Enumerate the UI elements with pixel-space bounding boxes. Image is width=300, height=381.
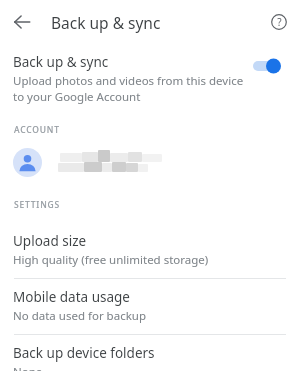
staticText: SETTINGS: [14, 199, 60, 211]
staticText: Upload photos and videos from this devic…: [13, 73, 245, 104]
button[interactable]: Upload size: [0, 223, 300, 278]
button[interactable]: [0, 136, 300, 189]
button[interactable]: Back up device folders: [0, 335, 300, 381]
staticText: Mobile data usage: [13, 288, 130, 306]
staticText: Back up & sync: [51, 12, 161, 33]
staticText: High quality (free unlimited storage): [13, 252, 209, 268]
staticText: Upload size: [13, 232, 87, 250]
button[interactable]: Back up & sync toggle: [253, 56, 287, 76]
staticText: Back up & sync: [13, 53, 109, 71]
button[interactable]: Back: [8, 8, 36, 36]
button[interactable]: Back up & sync: [0, 44, 300, 114]
staticText: None: [13, 364, 43, 371]
button[interactable]: Help: [265, 8, 293, 36]
staticText: ?: [277, 15, 282, 29]
staticText: No data used for backup: [13, 308, 146, 324]
staticText: ACCOUNT: [14, 124, 60, 136]
button[interactable]: Mobile data usage: [0, 279, 300, 334]
staticText: Back up device folders: [13, 344, 155, 362]
